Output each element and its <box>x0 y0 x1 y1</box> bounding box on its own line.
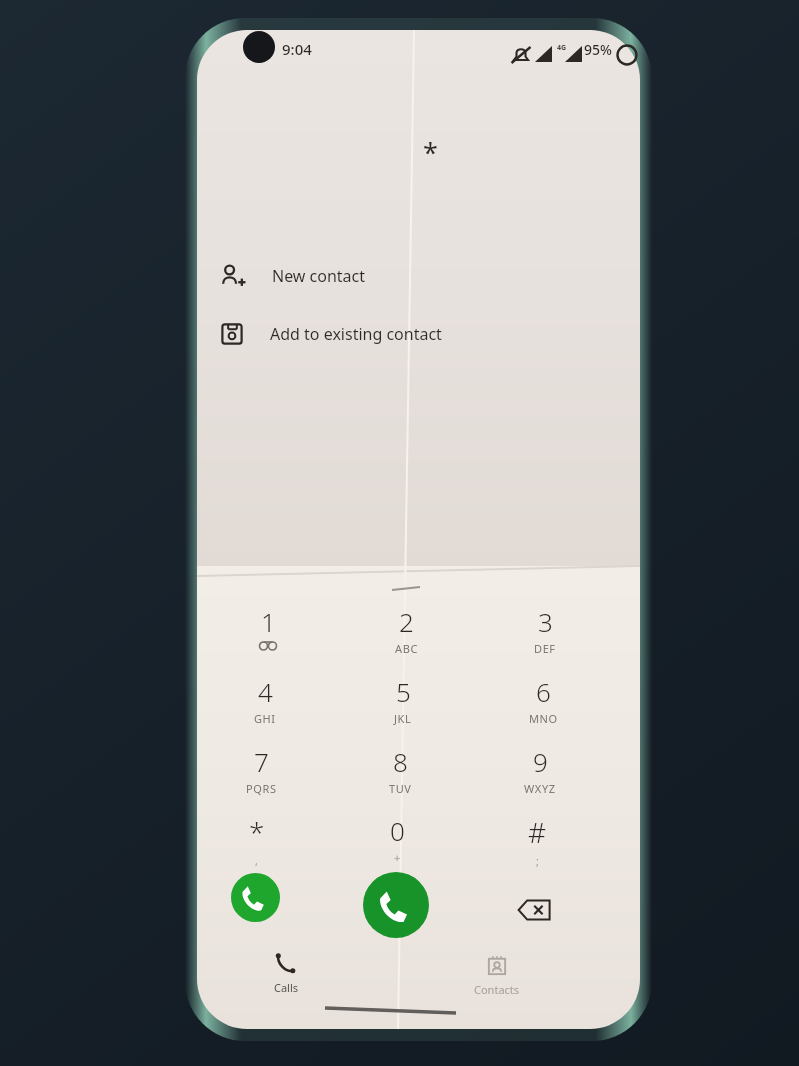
button[interactable]: Calls <box>240 953 332 1005</box>
staticText: 9 <box>533 744 548 779</box>
button[interactable]: 0 <box>351 813 443 879</box>
button[interactable]: 3 <box>499 604 591 670</box>
button[interactable]: New contact <box>197 253 597 299</box>
staticText: GHI <box>254 711 276 726</box>
button[interactable]: Add to existing contact <box>197 311 597 357</box>
button[interactable]: 6 <box>497 674 589 740</box>
staticText: + <box>394 850 401 865</box>
staticText: Calls <box>274 980 299 995</box>
button[interactable]: Contacts <box>451 955 543 1007</box>
staticText: 8 <box>393 744 408 779</box>
staticText: JKL <box>394 711 412 726</box>
staticText: Contacts <box>474 982 520 997</box>
button[interactable]: 1 <box>222 604 314 670</box>
staticText: New contact <box>272 265 366 287</box>
button[interactable]: 9 <box>494 744 586 810</box>
button[interactable]: * <box>211 813 303 879</box>
staticText: DEF <box>534 641 556 656</box>
staticText: 4 <box>258 674 273 709</box>
button[interactable]: # <box>491 813 583 879</box>
staticText: 9:04 <box>282 39 312 59</box>
button[interactable]: 5 <box>357 674 449 740</box>
staticText: 7 <box>254 744 269 779</box>
staticText: , <box>255 853 259 868</box>
staticText: TUV <box>389 781 412 796</box>
button[interactable]: 8 <box>354 744 446 810</box>
staticText: * <box>423 134 438 171</box>
staticText: Add to existing contact <box>270 323 442 345</box>
staticText: MNO <box>529 711 558 726</box>
button[interactable]: 7 <box>215 744 307 810</box>
staticText: PQRS <box>246 781 277 796</box>
staticText: 6 <box>536 674 551 709</box>
staticText: ; <box>536 853 540 868</box>
button[interactable]: Call using SIM 1 <box>363 872 429 938</box>
staticText: WXYZ <box>524 781 556 796</box>
button[interactable]: 2 <box>360 604 452 670</box>
staticText: * <box>249 813 265 851</box>
staticText: # <box>528 813 547 851</box>
staticText: 1 <box>261 604 276 639</box>
staticText: 2 <box>399 604 414 639</box>
button[interactable]: 4 <box>219 674 311 740</box>
staticText: 3 <box>538 604 553 639</box>
staticText: 4G <box>557 43 567 53</box>
staticText: 0 <box>390 813 405 848</box>
staticText: ABC <box>395 641 418 656</box>
staticText: 95% <box>584 40 612 59</box>
staticText: 5 <box>396 674 411 709</box>
button[interactable]: Call using SIM 2 <box>231 873 280 922</box>
button[interactable]: Backspace <box>510 893 558 927</box>
